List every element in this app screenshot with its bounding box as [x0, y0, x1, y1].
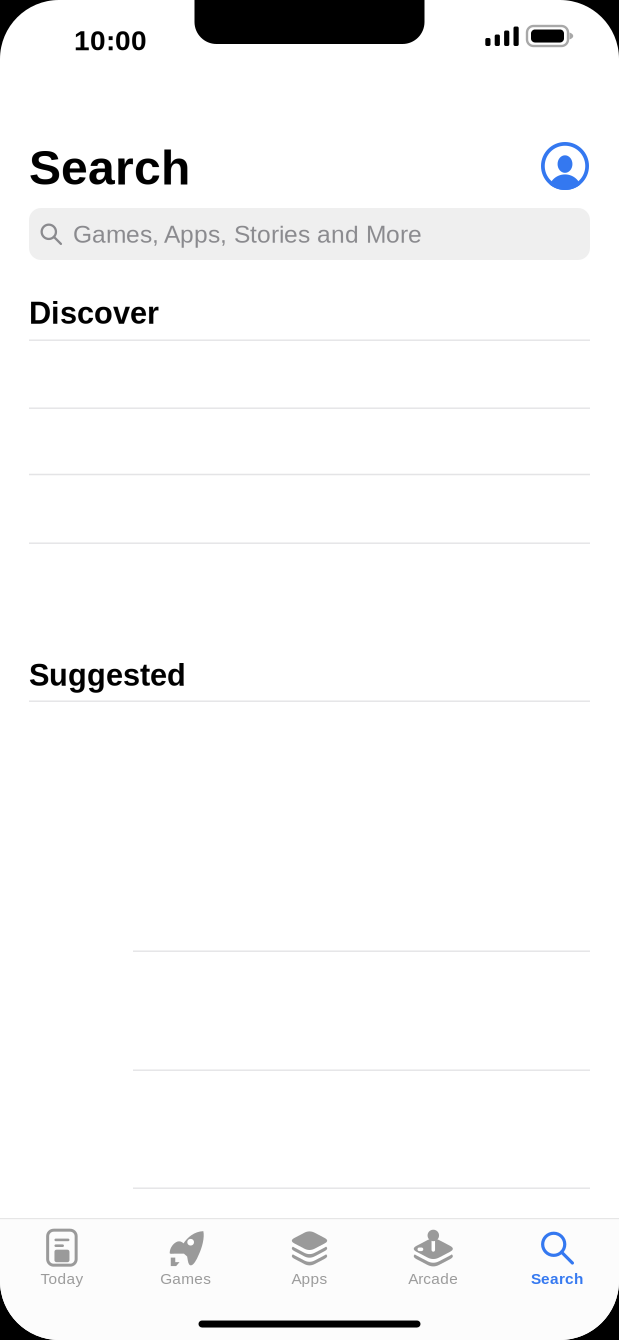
button[interactable]: Games, Apps, Stories and More [29, 208, 590, 260]
staticText: Today [40, 1270, 83, 1287]
staticText: 10:00 [74, 25, 147, 56]
button[interactable]: Search [495, 1219, 619, 1298]
button[interactable]: Arcade [371, 1219, 495, 1298]
staticText: Suggested [29, 658, 186, 692]
button[interactable] [29, 474, 590, 542]
button[interactable]: Today [0, 1219, 124, 1298]
staticText: Search [531, 1270, 583, 1287]
button[interactable]: Games [124, 1219, 248, 1298]
staticText: Search [29, 141, 190, 195]
staticText: Games [160, 1270, 211, 1287]
staticText: Arcade [408, 1270, 458, 1287]
button[interactable]: Account [541, 142, 589, 190]
button[interactable]: Apps [248, 1219, 371, 1298]
staticText: Apps [291, 1270, 327, 1287]
button[interactable] [29, 407, 590, 473]
button[interactable] [29, 340, 590, 407]
staticText: Games, Apps, Stories and More [73, 221, 422, 248]
staticText: Discover [29, 296, 159, 330]
